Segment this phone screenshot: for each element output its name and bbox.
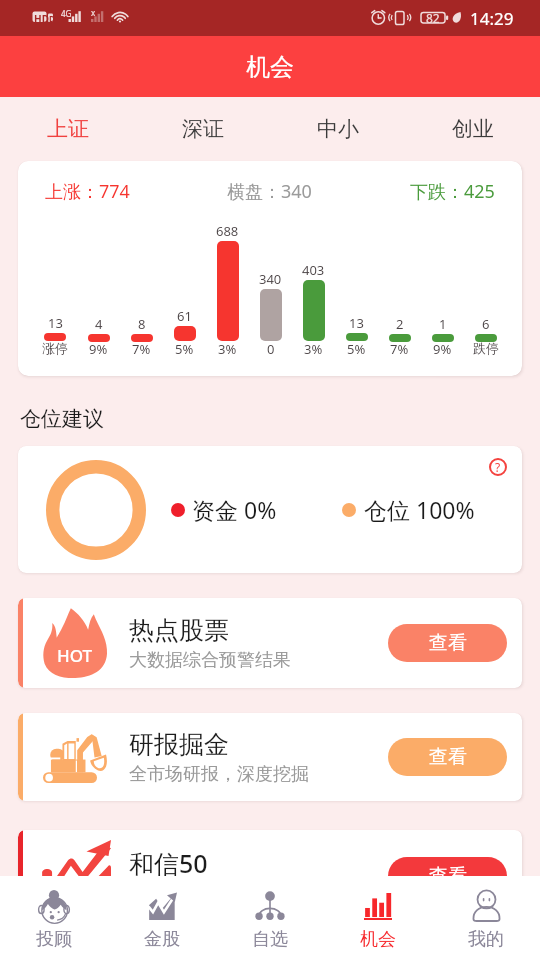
staticText: 金股 [144, 928, 180, 951]
staticText: 机会 [246, 52, 294, 82]
staticText: 5% [347, 340, 366, 358]
staticText: x [91, 7, 96, 18]
staticText: HD [34, 12, 49, 26]
button[interactable]: 和信50 [18, 830, 522, 922]
staticText: 创业 [452, 116, 494, 142]
button[interactable]: 查看 [388, 624, 507, 662]
button[interactable]: HOT [18, 598, 522, 688]
button[interactable]: 中小 [270, 97, 405, 161]
button[interactable]: 自选 [216, 876, 324, 960]
staticText: 大数据综合预警结果 [129, 649, 291, 672]
staticText: 上涨：774 [45, 179, 130, 204]
staticText: 跌停 [473, 340, 499, 356]
staticText: 研报掘金 [129, 729, 229, 760]
staticText: 深证 [182, 116, 224, 142]
button[interactable]: 研报掘金 [18, 713, 522, 801]
staticText: 82 [426, 10, 440, 26]
staticText: 7% [132, 340, 151, 358]
staticText: 1 [439, 315, 447, 333]
staticText: HOT [57, 644, 93, 667]
staticText: 9% [89, 340, 108, 358]
staticText: 4 [95, 315, 103, 333]
staticText: 涨停 [42, 340, 68, 356]
staticText: 9% [433, 340, 452, 358]
staticText: 688 [216, 222, 239, 240]
staticText: 6 [482, 315, 490, 333]
button[interactable]: 深证 [135, 97, 270, 161]
staticText: 和信50 [129, 846, 208, 880]
staticText: 横盘：340 [227, 179, 312, 204]
button[interactable]: 金股 [108, 876, 216, 960]
staticText: 热点股票 [129, 615, 229, 646]
staticText: 查看 [429, 745, 467, 769]
staticText: 8 [138, 315, 146, 333]
staticText: 下跌：425 [410, 179, 495, 204]
staticText: 5% [175, 340, 194, 358]
button[interactable]: 帮助 [489, 458, 507, 476]
button[interactable]: 创业 [405, 97, 540, 161]
button[interactable]: 上证 [0, 97, 135, 161]
staticText: 4G [61, 8, 72, 19]
staticText: 全市场研报，深度挖掘 [129, 763, 309, 786]
staticText: D [49, 13, 55, 24]
staticText: 13 [349, 314, 364, 332]
staticText: 340 [259, 270, 282, 288]
staticText: 2 [396, 315, 404, 333]
staticText: 我的 [468, 928, 504, 951]
staticText: 13 [48, 314, 63, 332]
button[interactable]: 机会 [324, 876, 432, 960]
button[interactable]: 我的 [432, 876, 540, 960]
staticText: 403 [302, 261, 325, 279]
staticText: 0 [267, 340, 275, 358]
staticText: 中小 [317, 116, 359, 142]
staticText: 查看 [429, 631, 467, 655]
staticText: 查看 [429, 864, 467, 888]
staticText: 7% [390, 340, 409, 358]
staticText: 优选白马，稳健增长 [129, 883, 291, 906]
staticText: 上证 [47, 116, 89, 142]
staticText: 仓位 100% [364, 494, 475, 525]
staticText: 61 [177, 307, 192, 325]
staticText: ? [495, 459, 501, 475]
staticText: 自选 [252, 928, 288, 951]
staticText: 投顾 [36, 928, 72, 951]
staticText: 资金 0% [192, 494, 277, 525]
button[interactable]: 投顾 [0, 876, 108, 960]
button[interactable]: 查看 [388, 738, 507, 776]
button[interactable]: 查看 [388, 857, 507, 895]
staticText: 14:29 [470, 7, 514, 30]
staticText: 3% [218, 340, 237, 358]
staticText: 仓位建议 [20, 406, 104, 432]
staticText: 机会 [360, 928, 396, 951]
staticText: 3% [304, 340, 323, 358]
